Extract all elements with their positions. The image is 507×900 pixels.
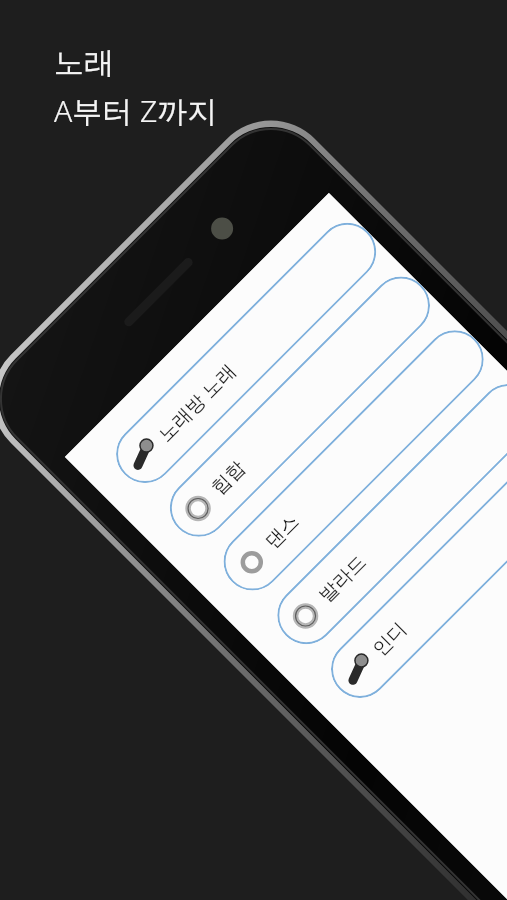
staticText: 노래	[54, 44, 114, 82]
staticText: A부터 Z까지	[54, 90, 218, 131]
button[interactable]: 인디	[319, 426, 507, 710]
staticText: 인디	[368, 617, 412, 661]
staticText: 힙합	[207, 456, 250, 500]
staticText: 발라드	[314, 550, 371, 607]
button[interactable]: 발라드	[265, 372, 507, 656]
button[interactable]: 노래방 노래	[104, 211, 388, 495]
button[interactable]: 힙합	[158, 265, 442, 549]
button[interactable]: 댄스	[211, 318, 496, 603]
staticText: 댄스	[260, 510, 304, 554]
button[interactable]: Phone preview	[0, 95, 507, 900]
staticText: 노래방 노래	[152, 358, 241, 447]
